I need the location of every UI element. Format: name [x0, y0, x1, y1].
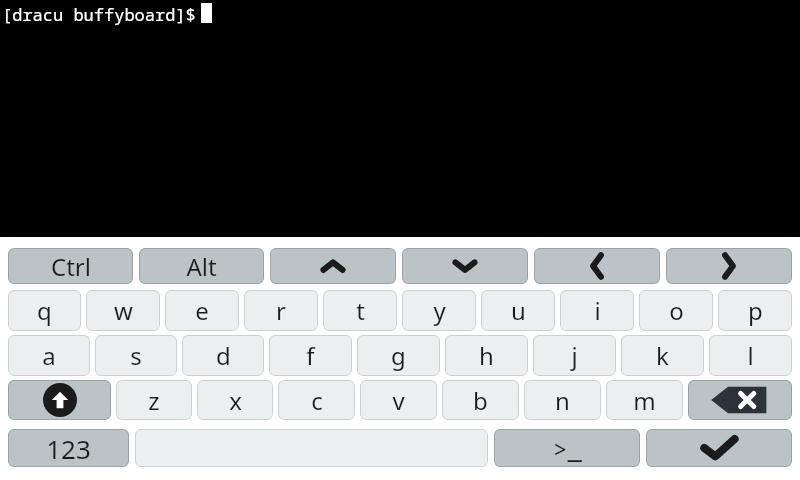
button[interactable]: f [269, 335, 352, 376]
staticText: u [511, 294, 526, 327]
staticText: c [311, 384, 323, 417]
button[interactable]: g [357, 335, 440, 376]
staticText: d [216, 339, 231, 372]
button[interactable]: a [8, 335, 90, 376]
staticText: q [37, 294, 52, 327]
staticText: z [148, 384, 160, 417]
button[interactable]: Ctrl [8, 248, 133, 284]
staticText: Ctrl [51, 250, 91, 283]
staticText: 123 [46, 431, 91, 466]
staticText: l [747, 339, 754, 372]
staticText: o [669, 294, 684, 327]
button[interactable]: Shift [8, 380, 111, 420]
button[interactable]: p [718, 290, 792, 331]
button[interactable]: t [323, 290, 397, 331]
staticText: y [433, 294, 446, 327]
staticText: h [479, 339, 494, 372]
button[interactable]: c [278, 380, 355, 420]
button[interactable]: y [402, 290, 476, 331]
staticText: j [571, 339, 578, 372]
staticText: Alt [186, 250, 217, 283]
button[interactable]: s [95, 335, 177, 376]
staticText: r [276, 294, 286, 327]
button[interactable]: Arrow right [666, 248, 792, 284]
button[interactable]: h [445, 335, 528, 376]
button[interactable]: z [116, 380, 192, 420]
staticText: m [633, 384, 656, 417]
button[interactable]: Arrow up [270, 248, 396, 284]
staticText: f [306, 339, 315, 372]
button[interactable]: 123 [8, 429, 129, 467]
button[interactable]: l [709, 335, 792, 376]
button[interactable]: j [533, 335, 616, 376]
button[interactable]: b [442, 380, 519, 420]
button[interactable]: Arrow left [534, 248, 660, 284]
staticText: a [42, 339, 56, 372]
staticText: w [114, 294, 133, 327]
button[interactable]: m [606, 380, 683, 420]
staticText: t [356, 294, 365, 327]
button[interactable]: Backspace [688, 380, 792, 420]
staticText: x [229, 384, 242, 417]
button[interactable]: w [86, 290, 160, 331]
button[interactable]: Space [135, 429, 488, 467]
staticText: i [594, 294, 601, 327]
staticText: [dracu buffyboard]$ [2, 3, 206, 26]
button[interactable]: n [524, 380, 601, 420]
staticText: n [555, 384, 570, 417]
button[interactable]: x [197, 380, 273, 420]
button[interactable]: v [360, 380, 437, 420]
button[interactable]: k [621, 335, 704, 376]
button[interactable]: o [639, 290, 713, 331]
staticText: p [748, 294, 763, 327]
button[interactable]: Enter [646, 429, 792, 467]
button[interactable]: e [165, 290, 239, 331]
staticText: k [656, 339, 669, 372]
button[interactable]: d [182, 335, 264, 376]
staticText: s [130, 339, 142, 372]
button[interactable]: Arrow down [402, 248, 528, 284]
button[interactable]: i [560, 290, 634, 331]
staticText: b [473, 384, 488, 417]
staticText: >_ [553, 432, 582, 465]
button[interactable]: r [244, 290, 318, 331]
staticText: e [195, 294, 209, 327]
button[interactable]: Alt [139, 248, 264, 284]
staticText: g [391, 339, 406, 372]
button[interactable]: u [481, 290, 555, 331]
button[interactable]: >_ [494, 429, 640, 467]
button[interactable]: q [8, 290, 81, 331]
staticText: v [392, 384, 405, 417]
